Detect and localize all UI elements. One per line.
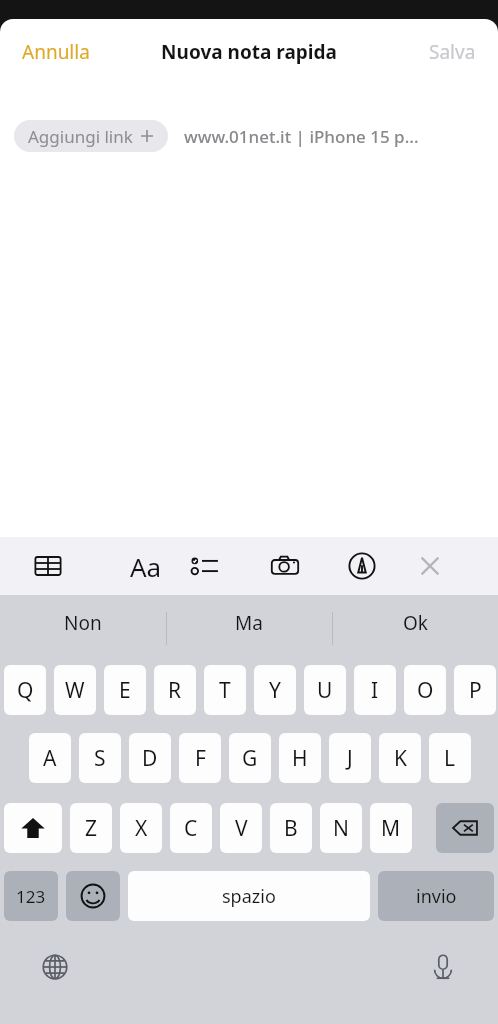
button[interactable]: U [304,665,346,715]
button[interactable]: Backspace [436,803,494,853]
button[interactable]: C [170,803,212,853]
staticText: N [333,814,349,843]
staticText: K [394,744,407,773]
button[interactable]: Annulla [10,33,102,71]
button[interactable]: P [454,665,496,715]
staticText: A [43,744,57,773]
button[interactable]: Table [28,537,68,595]
staticText: R [168,676,182,705]
button[interactable]: R [154,665,196,715]
staticText: Non [64,610,102,636]
button[interactable]: I [354,665,396,715]
staticText: C [184,814,198,843]
button[interactable]: L [429,733,471,783]
button[interactable]: Close [410,537,450,595]
staticText: J [347,744,353,773]
button[interactable]: Z [70,803,112,853]
button[interactable]: O [404,665,446,715]
button[interactable]: Ok [332,595,498,650]
button[interactable]: H [279,733,321,783]
staticText: spazio [222,884,276,909]
button[interactable]: G [229,733,271,783]
staticText: I [371,676,379,705]
button[interactable]: F [179,733,221,783]
button[interactable]: Salva [417,33,488,71]
button[interactable]: M [370,803,412,853]
staticText: D [142,744,158,773]
staticText: X [135,814,148,843]
staticText: Aa [130,549,162,584]
button[interactable]: K [379,733,421,783]
staticText: Q [17,676,34,705]
staticText: Y [269,676,281,705]
staticText: Annulla [22,39,90,65]
button[interactable]: Y [254,665,296,715]
staticText: www.01net.it | iPhone 15 p... [184,125,419,148]
staticText: 123 [16,885,46,908]
staticText: O [417,676,434,705]
staticText: Aggiungi link [28,125,133,148]
button[interactable]: B [270,803,312,853]
button[interactable]: invio [378,871,494,921]
staticText: Ok [403,610,428,636]
staticText: T [219,676,231,705]
button[interactable]: Markup [342,537,382,595]
button[interactable]: W [54,665,96,715]
staticText: H [292,744,308,773]
button[interactable]: Emoji [66,871,120,921]
button[interactable]: X [120,803,162,853]
button[interactable]: Dictate [422,945,464,989]
button[interactable]: Non [0,595,166,650]
staticText: V [235,814,248,843]
button[interactable]: Q [4,665,46,715]
staticText: L [444,744,456,773]
staticText: invio [416,884,457,909]
staticText: S [94,744,106,773]
staticText: Ma [235,610,263,636]
staticText: E [119,676,131,705]
staticText: Z [85,814,98,843]
button[interactable]: Shift [4,803,62,853]
button[interactable]: E [104,665,146,715]
button[interactable]: Aggiungi link [14,120,168,152]
button[interactable]: T [204,665,246,715]
staticText: F [195,744,206,773]
staticText: U [317,676,333,705]
button[interactable]: spazio [128,871,370,921]
staticText: Nuova nota rapida [161,39,337,65]
staticText: Salva [429,39,476,65]
button[interactable]: Checklist [185,537,225,595]
button[interactable]: 123 [4,871,58,921]
button[interactable]: J [329,733,371,783]
button[interactable]: Text format [120,537,172,595]
staticText: W [65,676,85,705]
staticText: G [242,744,258,773]
button[interactable]: Ma [166,595,332,650]
button[interactable]: Camera [265,537,305,595]
button[interactable]: D [129,733,171,783]
button[interactable]: V [220,803,262,853]
button[interactable]: S [79,733,121,783]
staticText: B [284,814,298,843]
staticText: M [381,814,401,843]
staticText: P [469,676,482,705]
button[interactable]: N [320,803,362,853]
button[interactable]: Change keyboard [34,945,76,989]
button[interactable]: A [29,733,71,783]
